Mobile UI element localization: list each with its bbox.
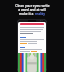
button[interactable]: Document title (20, 23, 44, 25)
button[interactable]: Color bars image (18, 53, 46, 72)
staticText: make it a (19, 12, 35, 16)
staticText: Clean your eyes: write (15, 4, 50, 8)
button[interactable]: Clean your eyes: write (3, 4, 61, 16)
staticText: reality (35, 12, 45, 16)
staticText: a word and at will (18, 8, 46, 12)
button[interactable]: Phone preview (17, 19, 47, 72)
